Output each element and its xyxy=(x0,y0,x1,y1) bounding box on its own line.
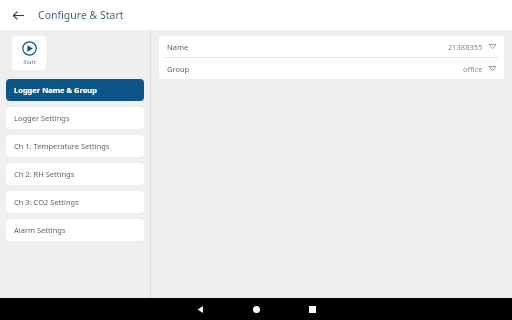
button[interactable]: Ch 1: Temperature Settings xyxy=(6,135,144,157)
button[interactable]: Start xyxy=(12,36,46,70)
staticText: Start xyxy=(23,58,36,65)
staticText: Ch 1: Temperature Settings xyxy=(14,141,110,151)
button[interactable]: Ch 2: RH Settings xyxy=(6,163,144,185)
button[interactable]: Recent apps xyxy=(284,298,340,320)
button[interactable]: Back xyxy=(172,298,228,320)
staticText: Configure & Start xyxy=(38,8,124,22)
staticText: Alarm Settings xyxy=(14,225,66,235)
staticText: Group xyxy=(167,64,190,74)
button[interactable]: Back xyxy=(6,3,30,27)
staticText: office xyxy=(463,64,483,74)
staticText: Ch 3: CO2 Settings xyxy=(14,197,79,207)
staticText: Ch 2: RH Settings xyxy=(14,169,75,179)
button[interactable]: Ch 3: CO2 Settings xyxy=(6,191,144,213)
staticText: Logger Settings xyxy=(14,113,70,123)
button[interactable]: Name xyxy=(159,36,504,57)
button[interactable]: Group xyxy=(159,58,504,79)
staticText: Logger Name & Group xyxy=(14,85,97,95)
button[interactable]: Alarm Settings xyxy=(6,219,144,241)
button[interactable]: Home xyxy=(228,298,284,320)
staticText: Name xyxy=(167,42,189,52)
button[interactable]: Logger Name & Group xyxy=(6,79,144,101)
staticText: 21388355 xyxy=(448,42,483,52)
button[interactable]: Logger Settings xyxy=(6,107,144,129)
